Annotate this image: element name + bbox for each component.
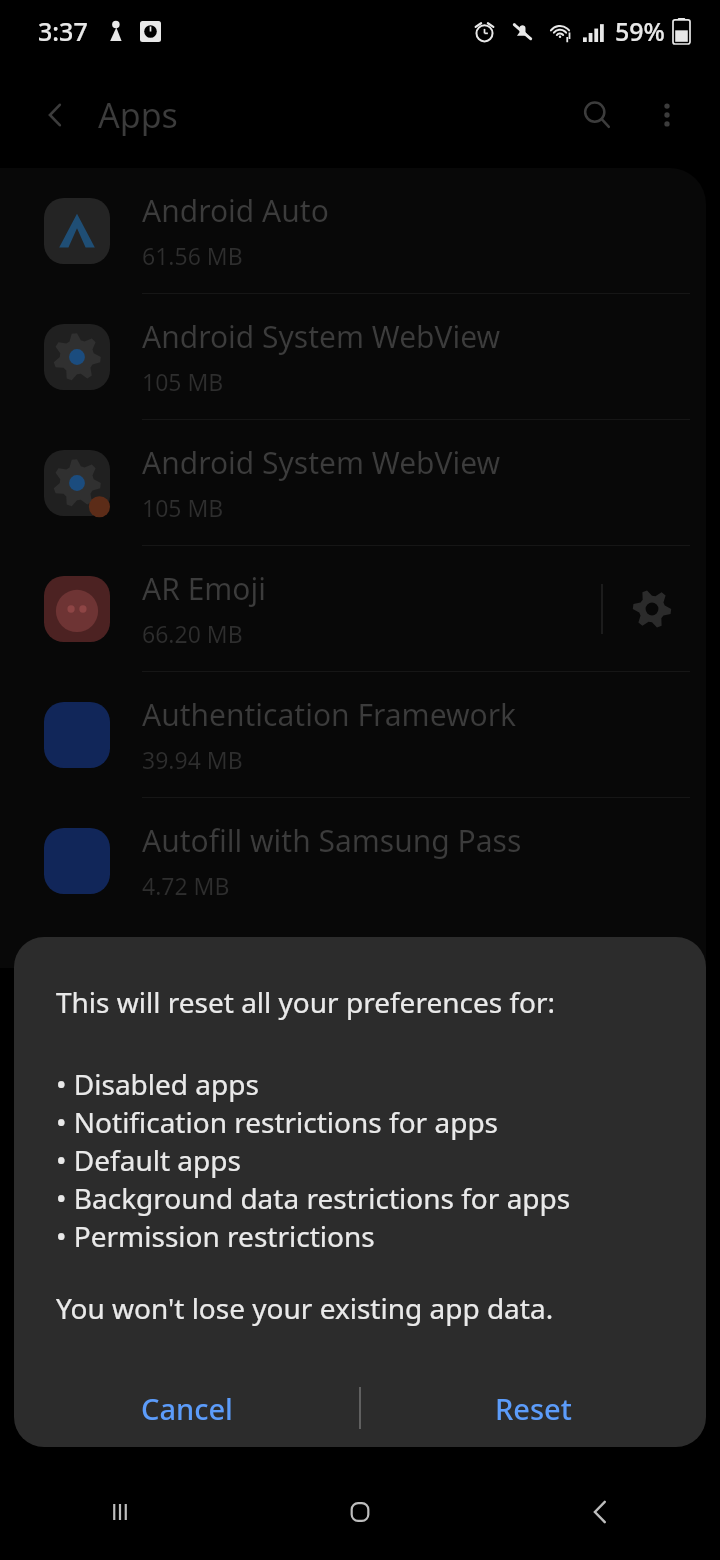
staticText: • Background data restrictions for apps [56, 1179, 571, 1217]
button[interactable]: Back [480, 1464, 720, 1560]
button[interactable]: Autofill with Samsung Pass [0, 798, 706, 923]
button[interactable]: Cancel [14, 1369, 359, 1447]
button[interactable]: Recent apps [0, 1464, 240, 1560]
button[interactable]: AR Emoji [0, 546, 706, 671]
staticText: This will reset all your preferences for… [56, 983, 556, 1021]
staticText: 61.56 MB [142, 240, 243, 271]
button[interactable]: Android System WebView [0, 294, 706, 419]
button[interactable]: Back [26, 86, 84, 144]
staticText: AR Emoji [142, 568, 266, 609]
staticText: You won't lose your existing app data. [56, 1289, 554, 1327]
staticText: Cancel [141, 1389, 233, 1428]
staticText: 59% [615, 14, 665, 48]
button[interactable]: More options [636, 84, 698, 146]
staticText: • Notification restrictions for apps [56, 1103, 499, 1141]
staticText: 66.20 MB [142, 618, 243, 649]
button[interactable]: App settings [616, 573, 688, 645]
staticText: • Permission restrictions [56, 1217, 375, 1255]
button[interactable]: Android System WebView [0, 420, 706, 545]
staticText: 3:37 [38, 14, 88, 48]
staticText: 39.94 MB [142, 744, 243, 775]
staticText: Autofill with Samsung Pass [142, 820, 522, 861]
staticText: • Default apps [56, 1141, 241, 1179]
staticText: Android Auto [142, 190, 329, 231]
staticText: 105 MB [142, 492, 224, 523]
button[interactable]: Reset [361, 1369, 706, 1447]
staticText: Android System WebView [142, 442, 501, 483]
button[interactable]: Search [566, 84, 628, 146]
button[interactable]: Authentication Framework [0, 672, 706, 797]
staticText: 105 MB [142, 366, 224, 397]
staticText: Apps [98, 92, 178, 138]
staticText: Android System WebView [142, 316, 501, 357]
staticText: 4.72 MB [142, 870, 230, 901]
staticText: • Disabled apps [56, 1065, 259, 1103]
button[interactable]: Android Auto [0, 168, 706, 293]
button[interactable]: Home [240, 1464, 480, 1560]
staticText: Authentication Framework [142, 694, 517, 735]
staticText: Reset [495, 1389, 572, 1428]
